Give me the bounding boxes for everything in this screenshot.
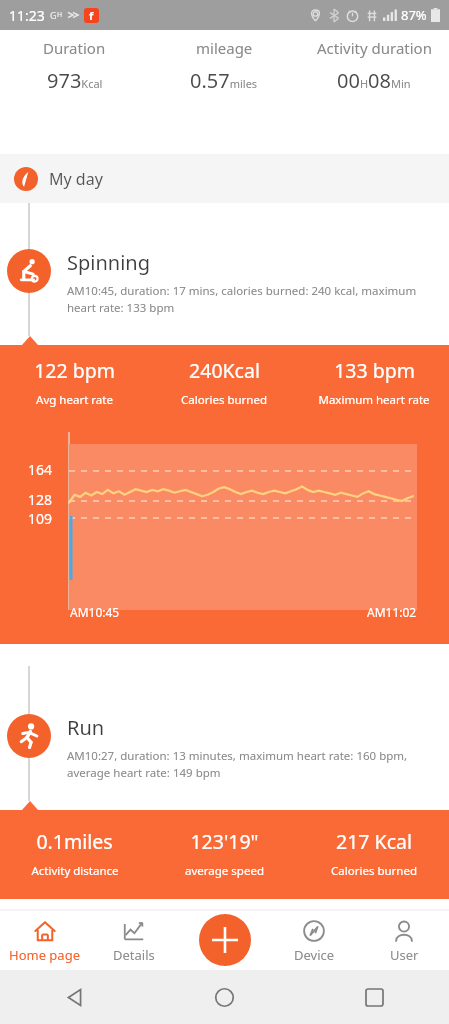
button[interactable]: My day <box>0 154 449 203</box>
button[interactable]: Home <box>149 970 299 1024</box>
staticText: 240Kcal <box>189 357 260 384</box>
staticText: 00H08Min <box>337 67 411 94</box>
staticText: 128 <box>28 490 53 509</box>
staticText: mileage <box>196 38 253 58</box>
staticText: 217 Kcal <box>336 828 412 855</box>
button[interactable]: Add activity <box>199 914 251 966</box>
button[interactable]: Details <box>89 910 179 970</box>
staticText: Maximum heart rate <box>318 392 430 408</box>
button[interactable]: 122 bpm <box>0 336 449 644</box>
staticText: 133 bpm <box>334 357 415 384</box>
button[interactable]: Device <box>269 910 359 970</box>
staticText: My day <box>49 168 103 190</box>
staticText: Run <box>67 714 105 741</box>
button[interactable]: User <box>359 910 449 970</box>
staticText: Avg heart rate <box>36 392 113 408</box>
button[interactable]: Home page <box>0 910 89 970</box>
staticText: AM10:45, duration: 17 mins, calories bur… <box>67 283 439 315</box>
button[interactable]: Back <box>0 970 149 1024</box>
staticText: 0.57miles <box>190 67 258 94</box>
button[interactable]: Recents <box>299 970 449 1024</box>
staticText: Device <box>294 946 335 964</box>
staticText: Activity duration <box>317 38 432 58</box>
staticText: User <box>390 946 419 964</box>
staticText: 123'19" <box>190 828 259 855</box>
staticText: 11:23 <box>9 6 45 25</box>
staticText: AM10:45 <box>70 604 120 620</box>
staticText: 109 <box>28 509 53 528</box>
staticText: Home page <box>9 946 80 964</box>
staticText: 164 <box>28 460 53 479</box>
staticText: f <box>89 8 94 23</box>
staticText: AM10:27, duration: 13 minutes, maximum h… <box>67 748 439 780</box>
staticText: G <box>50 9 57 21</box>
staticText: Details <box>113 946 155 964</box>
staticText: Calories burned <box>181 392 267 408</box>
staticText: Activity distance <box>31 863 119 879</box>
staticText: AM11:02 <box>367 604 417 620</box>
staticText: 87% <box>401 6 427 24</box>
staticText: H <box>57 10 63 20</box>
button[interactable]: Run <box>0 666 449 801</box>
staticText: 0.1miles <box>36 828 113 855</box>
staticText: 973Kcal <box>47 67 103 94</box>
button[interactable]: Spinning <box>0 203 449 336</box>
staticText: Duration <box>43 38 106 58</box>
button[interactable]: 0.1miles <box>0 801 449 899</box>
staticText: Spinning <box>67 249 150 276</box>
staticText: 122 bpm <box>34 357 115 384</box>
staticText: average speed <box>185 863 264 879</box>
staticText: Calories burned <box>331 863 417 879</box>
